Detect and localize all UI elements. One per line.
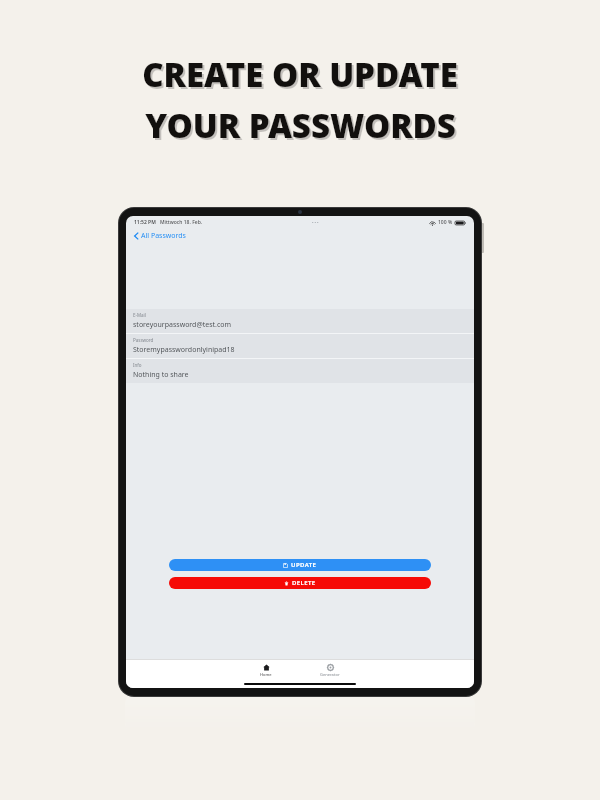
staticText: YOUR PASSWORDS [145,103,456,148]
staticText: Info [133,362,142,368]
staticText: All Passwords [141,231,186,241]
staticText: DELETE [292,579,316,587]
staticText: storeyourpassword@test.com [133,320,232,330]
button[interactable]: E-Mail [126,309,474,333]
button[interactable]: All Passwords [132,229,474,243]
button[interactable]: Password [126,334,474,358]
staticText: Storemypasswordonlyinipad18 [133,345,235,355]
staticText: E-Mail [133,312,146,318]
staticText: Nothing to share [133,370,189,380]
staticText: Mittwoch 18. Feb. [160,219,203,226]
staticText: CREATE OR UPDATE [144,54,460,99]
button[interactable]: UPDATE [169,559,431,571]
button[interactable]: Generator [314,663,346,678]
staticText: CREATE OR UPDATE [142,52,458,97]
staticText: YOUR PASSWORDS [147,105,458,150]
staticText: UPDATE [291,561,317,569]
staticText: Password [133,337,154,343]
staticText: • • • [312,220,319,225]
button[interactable]: Home [254,663,278,678]
button[interactable]: Info [126,359,474,383]
button[interactable]: DELETE [169,577,431,589]
staticText: 11:52 PM [134,219,156,226]
staticText: 100 % [438,219,453,226]
staticText: Home [260,672,272,677]
staticText: Generator [320,672,340,677]
